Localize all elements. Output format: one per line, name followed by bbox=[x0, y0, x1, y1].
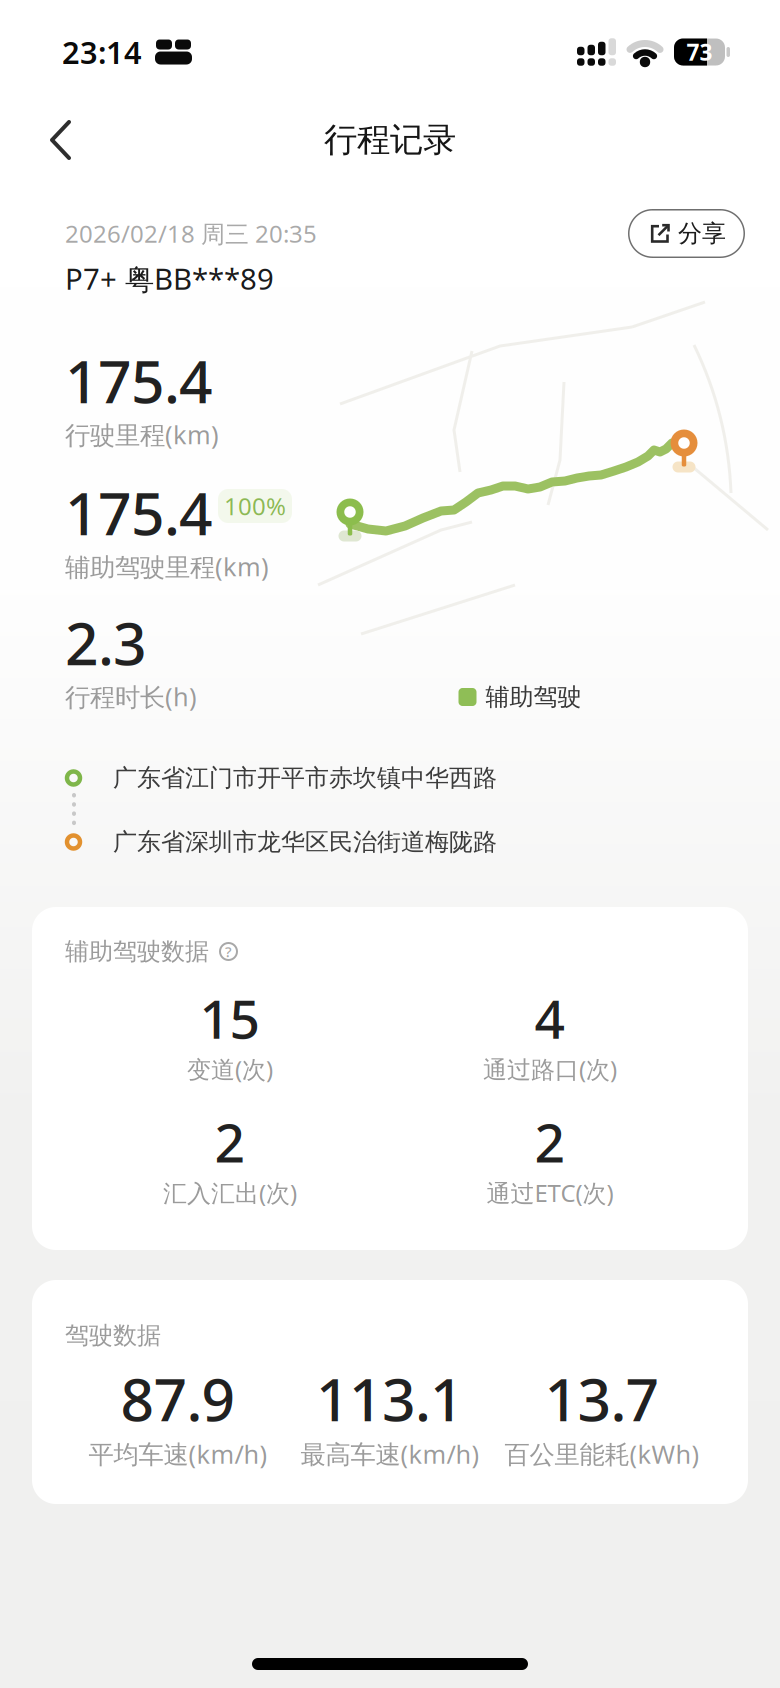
staticText: 100% bbox=[224, 490, 286, 522]
staticText: 最高车速(km/h) bbox=[300, 1437, 479, 1471]
staticText: 175.4 bbox=[65, 341, 213, 419]
staticText: 2.3 bbox=[65, 603, 147, 681]
staticText: ? bbox=[225, 942, 232, 961]
staticText: 4 bbox=[534, 983, 565, 1053]
staticText: 广东省江门市开平市赤坎镇中华西路 bbox=[113, 763, 497, 793]
staticText: 2 bbox=[214, 1106, 245, 1177]
staticText: 平均车速(km/h) bbox=[88, 1437, 267, 1471]
staticText: 行驶里程(km) bbox=[65, 418, 219, 451]
staticText: 通过路口(次) bbox=[483, 1053, 617, 1085]
button[interactable]: 返回 bbox=[44, 116, 80, 164]
staticText: 行程记录 bbox=[324, 119, 456, 160]
staticText: 辅助驾驶里程(km) bbox=[65, 550, 269, 583]
staticText: 百公里能耗(kWh) bbox=[504, 1437, 699, 1471]
staticText: 2 bbox=[534, 1106, 565, 1177]
staticText: 87.9 bbox=[120, 1359, 235, 1437]
staticText: 73 bbox=[686, 37, 712, 67]
staticText: 行程时长(h) bbox=[65, 680, 197, 713]
staticText: 175.4 bbox=[65, 473, 213, 551]
staticText: 通过ETC(次) bbox=[486, 1177, 613, 1209]
staticText: 变道(次) bbox=[187, 1053, 273, 1085]
staticText: 广东省深圳市龙华区民治街道梅陇路 bbox=[113, 827, 497, 857]
button[interactable]: 分享 bbox=[628, 209, 745, 258]
staticText: 辅助驾驶数据 bbox=[65, 937, 209, 966]
staticText: 分享 bbox=[678, 219, 726, 248]
staticText: 2026/02/18 周三 20:35 bbox=[65, 218, 317, 249]
staticText: 汇入汇出(次) bbox=[163, 1177, 297, 1209]
staticText: 15 bbox=[199, 983, 260, 1053]
staticText: 辅助驾驶 bbox=[485, 682, 581, 712]
staticText: 13.7 bbox=[544, 1359, 659, 1437]
button[interactable]: 辅助驾驶数据说明 bbox=[219, 942, 238, 961]
staticText: 23:14 bbox=[62, 32, 142, 72]
staticText: 驾驶数据 bbox=[65, 1321, 161, 1350]
staticText: P7+ 粤BB***89 bbox=[65, 259, 274, 298]
staticText: 113.1 bbox=[316, 1359, 464, 1437]
